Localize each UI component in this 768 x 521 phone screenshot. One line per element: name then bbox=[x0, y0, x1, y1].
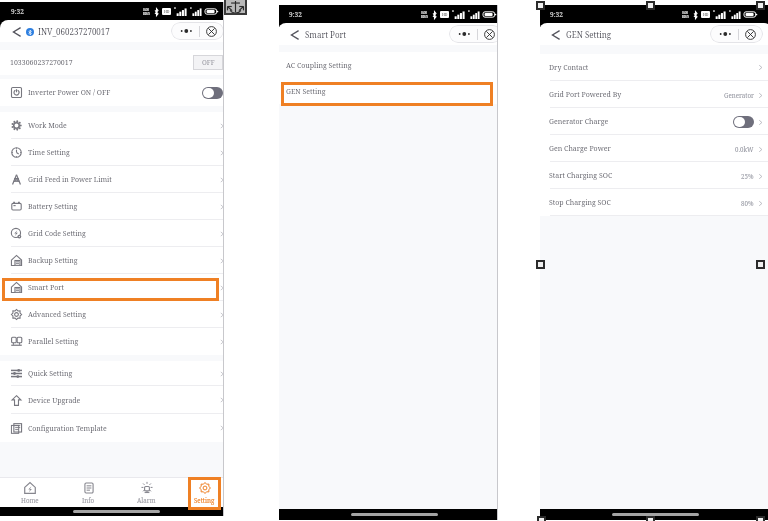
staticText: KB/S bbox=[682, 15, 689, 19]
staticText: GEN Setting bbox=[566, 29, 612, 40]
staticText: 0.00 bbox=[143, 8, 150, 12]
button[interactable]: Grid Code Setting bbox=[0, 220, 233, 247]
staticText: 1033060237270017 bbox=[10, 58, 73, 68]
staticText: Inverter Power ON / OFF bbox=[28, 88, 111, 98]
button[interactable]: Back bbox=[9, 24, 24, 39]
staticText: Work Mode bbox=[28, 121, 67, 131]
button[interactable]: Back bbox=[287, 27, 302, 42]
button[interactable]: Alarm bbox=[130, 478, 163, 507]
staticText: 25% bbox=[741, 172, 754, 180]
button[interactable]: Highlighted item bbox=[281, 82, 493, 106]
button[interactable]: Info bbox=[72, 478, 105, 507]
button[interactable]: Close bbox=[484, 29, 495, 40]
button[interactable]: Dry Contact bbox=[539, 54, 768, 81]
staticText: Gen Charge Power bbox=[549, 144, 611, 154]
button[interactable]: More options bbox=[458, 31, 472, 37]
staticText: 9:32 bbox=[289, 10, 302, 19]
staticText: HD bbox=[442, 12, 448, 17]
button[interactable]: Home bbox=[13, 478, 46, 507]
button[interactable]: Generator Charge bbox=[539, 108, 768, 135]
button[interactable]: Close bbox=[745, 29, 756, 40]
staticText: Grid Feed in Power Limit bbox=[28, 175, 112, 185]
staticText: Advanced Setting bbox=[28, 310, 86, 320]
staticText: Battery Setting bbox=[28, 202, 78, 212]
button[interactable]: Device Upgrade bbox=[0, 386, 233, 414]
staticText: 9:32 bbox=[11, 7, 24, 16]
staticText: KB/S bbox=[143, 12, 150, 16]
staticText: Smart Port bbox=[28, 283, 64, 293]
staticText: 80% bbox=[741, 199, 754, 207]
button[interactable]: OFF bbox=[193, 55, 223, 70]
staticText: Grid Code Setting bbox=[28, 229, 86, 239]
button[interactable]: Configuration Template bbox=[0, 414, 233, 442]
button[interactable]: Highlighted item bbox=[188, 477, 221, 510]
staticText: Setting bbox=[194, 496, 215, 504]
staticText: Smart Port bbox=[305, 29, 347, 40]
button[interactable]: GEN Setting bbox=[278, 80, 511, 104]
staticText: AC Coupling Setting bbox=[286, 61, 352, 71]
staticText: OFF bbox=[202, 58, 215, 67]
button[interactable]: More options bbox=[719, 31, 733, 37]
button[interactable]: Quick Setting bbox=[0, 361, 233, 386]
staticText: Info bbox=[82, 496, 95, 504]
staticText: 0.0kW bbox=[735, 145, 754, 153]
staticText: 9:32 bbox=[550, 10, 563, 19]
staticText: Dry Contact bbox=[549, 63, 589, 73]
button[interactable]: Battery Setting bbox=[0, 193, 233, 220]
staticText: Generator Charge bbox=[549, 117, 609, 127]
button[interactable]: Gen Charge Power bbox=[539, 135, 768, 162]
staticText: Start Charging SOC bbox=[549, 171, 613, 181]
staticText: HD bbox=[703, 12, 709, 17]
button[interactable]: Work Mode bbox=[0, 112, 233, 139]
staticText: Generator bbox=[724, 91, 754, 99]
staticText: KB/S bbox=[421, 15, 428, 19]
button[interactable]: 1033060237270017 bbox=[0, 50, 233, 75]
button[interactable]: Time Setting bbox=[0, 139, 233, 166]
staticText: GEN Setting bbox=[286, 87, 326, 97]
button[interactable]: Toggle bbox=[733, 116, 754, 128]
button[interactable]: Grid Port Powered By bbox=[539, 81, 768, 108]
staticText: Home bbox=[21, 496, 39, 504]
button[interactable]: Advanced Setting bbox=[0, 301, 233, 328]
button[interactable]: Highlighted item bbox=[2, 278, 219, 301]
button[interactable]: Back bbox=[548, 27, 563, 42]
staticText: Parallel Setting bbox=[28, 337, 79, 347]
staticText: 0.00 bbox=[682, 11, 689, 15]
button[interactable]: More options bbox=[180, 28, 194, 34]
staticText: Backup Setting bbox=[28, 256, 78, 266]
staticText: Configuration Template bbox=[28, 424, 107, 434]
staticText: INV_060237270017 bbox=[38, 26, 110, 37]
staticText: Grid Port Powered By bbox=[549, 90, 622, 100]
button[interactable]: Toggle bbox=[202, 87, 223, 99]
button[interactable]: Inverter Power ON / OFF bbox=[0, 79, 233, 106]
button[interactable]: Smart Port bbox=[0, 274, 233, 301]
staticText: Quick Setting bbox=[28, 369, 73, 379]
button[interactable]: Setting bbox=[188, 478, 221, 507]
button[interactable]: Backup Setting bbox=[0, 247, 233, 274]
staticText: Time Setting bbox=[28, 148, 70, 158]
staticText: Alarm bbox=[137, 496, 156, 504]
staticText: 0.00 bbox=[421, 11, 428, 15]
staticText: Stop Charging SOC bbox=[549, 198, 611, 208]
staticText: HD bbox=[164, 9, 170, 14]
button[interactable]: Start Charging SOC bbox=[539, 162, 768, 189]
button[interactable]: Close bbox=[206, 26, 217, 37]
button[interactable]: Parallel Setting bbox=[0, 328, 233, 355]
staticText: Device Upgrade bbox=[28, 396, 81, 406]
button[interactable]: Stop Charging SOC bbox=[539, 189, 768, 216]
button[interactable]: AC Coupling Setting bbox=[278, 52, 511, 80]
button[interactable]: Grid Feed in Power Limit bbox=[0, 166, 233, 193]
